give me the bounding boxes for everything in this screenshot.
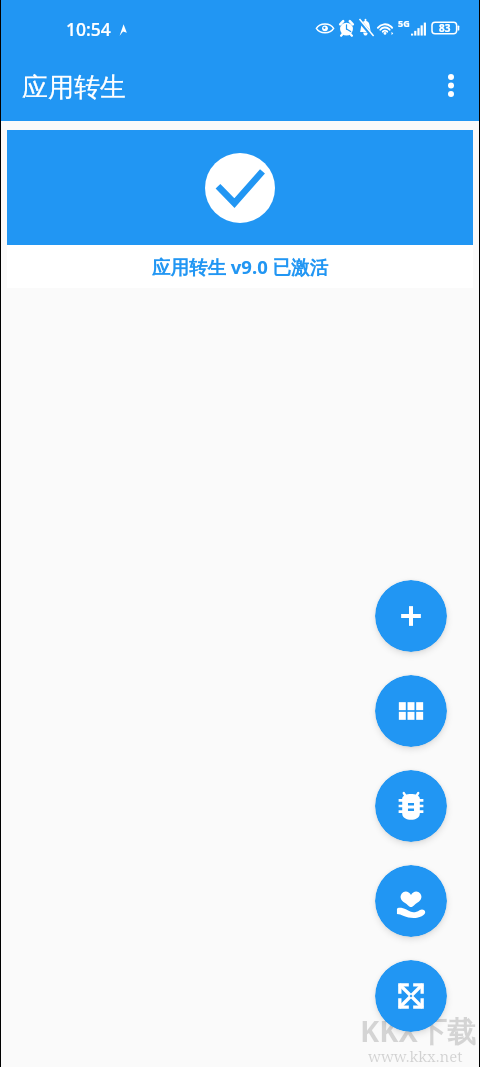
button[interactable]: More options xyxy=(429,63,473,107)
staticText: 10:54 xyxy=(66,17,111,41)
button[interactable]: Add xyxy=(375,580,447,652)
button[interactable]: Fullscreen xyxy=(375,960,447,1032)
staticText: 5G xyxy=(398,17,410,29)
staticText: KKX下载 xyxy=(360,1011,476,1051)
button[interactable]: Bug report xyxy=(375,770,447,842)
staticText: 应用转生 xyxy=(22,71,126,104)
button[interactable]: Donate xyxy=(375,865,447,937)
button[interactable]: All apps xyxy=(375,675,447,747)
staticText: 83 xyxy=(439,21,451,35)
staticText: www.kkx.net xyxy=(368,1046,463,1066)
staticText: 应用转生 v9.0 已激活 xyxy=(152,254,329,279)
